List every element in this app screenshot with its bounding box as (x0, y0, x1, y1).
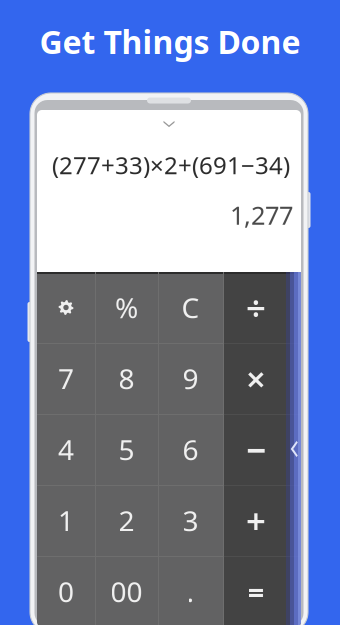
button[interactable]: 4 (37, 414, 95, 485)
button[interactable]: 9 (158, 343, 223, 414)
button[interactable]: . (158, 556, 223, 625)
staticText: 0 (58, 573, 74, 610)
staticText: 9 (182, 360, 198, 397)
staticText: 00 (110, 573, 142, 610)
staticText: ÷ (246, 284, 266, 330)
staticText: 3 (182, 502, 198, 539)
staticText: 7 (58, 360, 74, 397)
button[interactable]: + (223, 485, 289, 556)
button[interactable]: 6 (158, 414, 223, 485)
staticText: = (247, 572, 264, 611)
staticText: Get Things Done (39, 20, 300, 63)
staticText: 1 (58, 502, 74, 539)
staticText: 5 (118, 431, 134, 468)
staticText: 2 (118, 502, 134, 539)
button[interactable]: − (223, 414, 289, 485)
button[interactable]: 8 (95, 343, 158, 414)
button[interactable]: 5 (95, 414, 158, 485)
staticText: % (115, 289, 138, 326)
button[interactable]: Settings (37, 272, 95, 343)
staticText: 1,277 (230, 198, 293, 232)
button[interactable]: 00 (95, 556, 158, 625)
button[interactable]: 0 (37, 556, 95, 625)
staticText: 6 (182, 431, 198, 468)
button[interactable]: Collapse history (147, 113, 191, 135)
button[interactable]: 7 (37, 343, 95, 414)
staticText: (277+33)×2+(691−34) (52, 149, 290, 181)
staticText: − (246, 426, 266, 472)
button[interactable]: × (223, 343, 289, 414)
button[interactable]: ÷ (223, 272, 289, 343)
staticText: C (181, 289, 199, 326)
button[interactable]: 2 (95, 485, 158, 556)
staticText: 8 (118, 360, 134, 397)
staticText: × (246, 355, 266, 401)
button[interactable]: C (158, 272, 223, 343)
staticText: 4 (58, 431, 74, 468)
staticText: + (246, 497, 266, 543)
button[interactable]: 1 (37, 485, 95, 556)
button[interactable]: 3 (158, 485, 223, 556)
button[interactable]: Open side panel (286, 272, 301, 625)
button[interactable]: = (223, 556, 289, 625)
staticText: . (186, 573, 194, 610)
button[interactable]: % (95, 272, 158, 343)
